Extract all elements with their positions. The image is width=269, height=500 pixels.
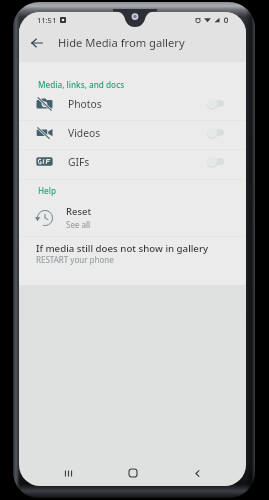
staticText: Photos	[68, 97, 102, 111]
button[interactable]: GIFs	[19, 147, 246, 176]
button[interactable]: Home	[118, 460, 148, 486]
button[interactable]: Videos	[19, 118, 246, 147]
button[interactable]: Back	[182, 460, 212, 486]
staticText: See all	[66, 219, 91, 230]
staticText: 11:51	[37, 15, 57, 25]
staticText: Reset	[66, 205, 92, 218]
button[interactable]: Photos	[19, 89, 246, 118]
staticText: RESTART your phone	[36, 254, 114, 265]
staticText: If media still does not show in gallery	[36, 242, 209, 255]
button[interactable]: Back	[25, 31, 49, 55]
staticText: Media, links, and docs	[38, 79, 125, 90]
staticText: GIFs	[68, 155, 90, 169]
button[interactable]: Reset	[19, 202, 246, 233]
button[interactable]: Recent apps	[53, 460, 83, 486]
staticText: Help	[38, 185, 57, 196]
staticText: Hide Media from gallery	[58, 35, 185, 50]
staticText: Videos	[68, 126, 101, 140]
